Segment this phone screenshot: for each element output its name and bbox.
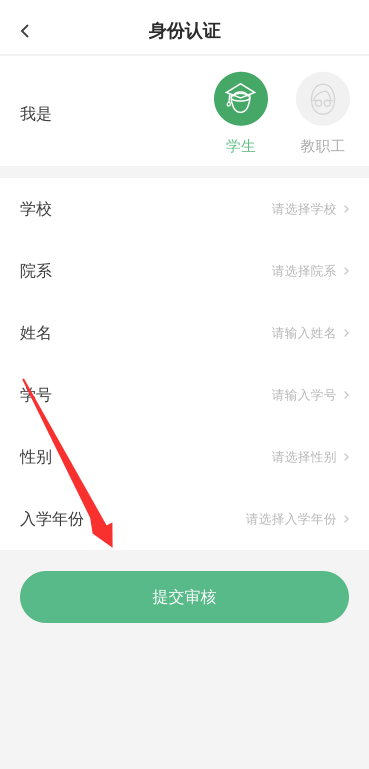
button[interactable]: 姓名 <box>0 302 369 364</box>
staticText: 学校 <box>20 199 52 219</box>
staticText: 院系 <box>20 261 52 281</box>
button[interactable]: 院系 <box>0 240 369 302</box>
staticText: 姓名 <box>20 323 52 343</box>
button[interactable]: 学号 <box>0 364 369 426</box>
button[interactable]: 学生 <box>213 67 269 155</box>
button[interactable]: 性别 <box>0 426 369 488</box>
button[interactable]: 入学年份 <box>0 488 369 550</box>
staticText: 学号 <box>20 385 52 405</box>
staticText: 请输入学号 <box>272 387 337 403</box>
button[interactable]: Back <box>0 0 46 54</box>
staticText: 请选择院系 <box>272 263 337 279</box>
staticText: 请选择性别 <box>272 449 337 465</box>
staticText: 学生 <box>226 137 256 155</box>
staticText: 请选择学校 <box>272 201 337 217</box>
staticText: 身份认证 <box>148 20 220 42</box>
staticText: 提交审核 <box>152 587 216 607</box>
staticText: 教职工 <box>300 137 345 155</box>
staticText: 入学年份 <box>20 509 84 529</box>
button[interactable]: 学校 <box>0 178 369 240</box>
staticText: 性别 <box>20 447 52 467</box>
button[interactable]: 提交审核 <box>20 571 349 623</box>
staticText: 我是 <box>20 104 52 124</box>
staticText: 请输入姓名 <box>272 325 337 341</box>
staticText: 请选择入学年份 <box>246 511 337 527</box>
button[interactable]: 教职工 <box>295 67 351 155</box>
